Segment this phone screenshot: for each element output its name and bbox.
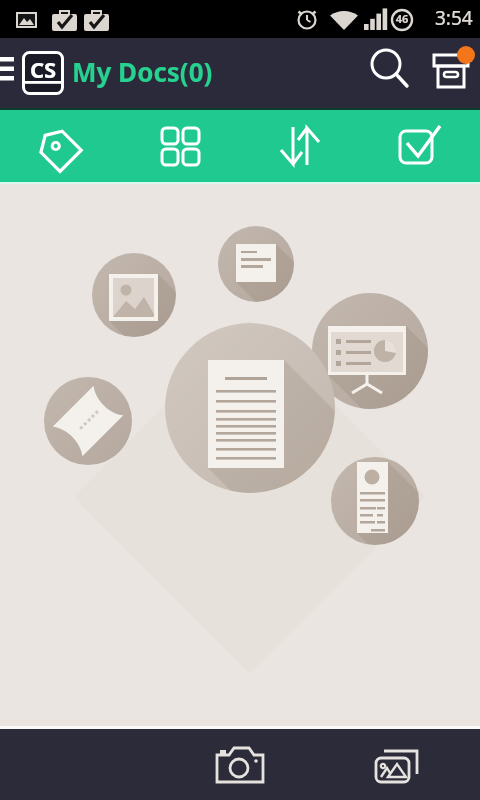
- button[interactable]: Tags: [0, 110, 120, 182]
- button[interactable]: Sort: [240, 110, 360, 182]
- button[interactable]: Select: [360, 110, 480, 182]
- staticText: My Docs(0): [72, 54, 213, 89]
- button[interactable]: Import from gallery: [347, 729, 447, 800]
- button[interactable]: Take photo: [190, 729, 290, 800]
- button[interactable]: Grid view: [120, 110, 240, 182]
- button[interactable]: Search: [362, 38, 424, 108]
- staticText: 3:54: [435, 5, 473, 31]
- staticText: 46: [394, 11, 410, 26]
- staticText: CS: [30, 54, 57, 84]
- button[interactable]: CS: [22, 51, 64, 95]
- button[interactable]: Archive: [424, 38, 480, 108]
- button[interactable]: Open navigation menu: [0, 38, 18, 108]
